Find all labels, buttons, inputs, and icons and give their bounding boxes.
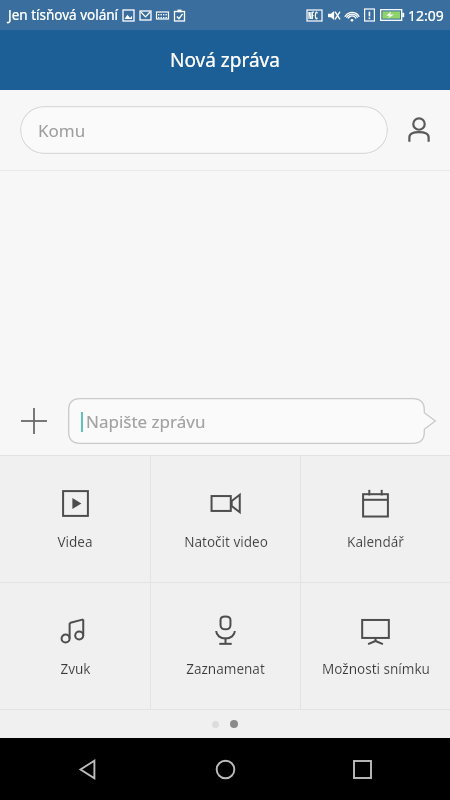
staticText: 12:09 <box>408 6 444 25</box>
staticText: Kalendář <box>347 533 404 551</box>
staticText: Komu <box>38 119 86 142</box>
button[interactable]: Komu <box>20 106 388 154</box>
button[interactable]: Možnosti snímku <box>301 583 450 709</box>
button[interactable]: Zvuk <box>0 583 150 709</box>
button[interactable]: Vybrat kontakt <box>388 99 450 161</box>
staticText: Videa <box>57 533 93 551</box>
staticText: Natočit video <box>184 533 268 551</box>
button[interactable]: Zpět <box>60 741 116 797</box>
button[interactable]: Domů <box>197 741 253 797</box>
staticText: Zvuk <box>60 660 91 678</box>
staticText: Napište zprávu <box>86 410 206 433</box>
button[interactable]: Natočit video <box>151 456 300 582</box>
button[interactable]: Zaznamenat <box>151 583 300 709</box>
button[interactable]: Napište zprávu <box>68 398 436 444</box>
staticText: Možnosti snímku <box>322 660 430 678</box>
button[interactable]: Nedávné aplikace <box>334 741 390 797</box>
button[interactable]: Videa <box>0 456 150 582</box>
staticText: Jen tísňová volání <box>8 6 119 24</box>
button[interactable]: Kalendář <box>301 456 450 582</box>
staticText: Zaznamenat <box>186 660 265 678</box>
staticText: Nová zpráva <box>170 47 280 73</box>
button[interactable]: Přidat přílohu <box>0 387 68 455</box>
